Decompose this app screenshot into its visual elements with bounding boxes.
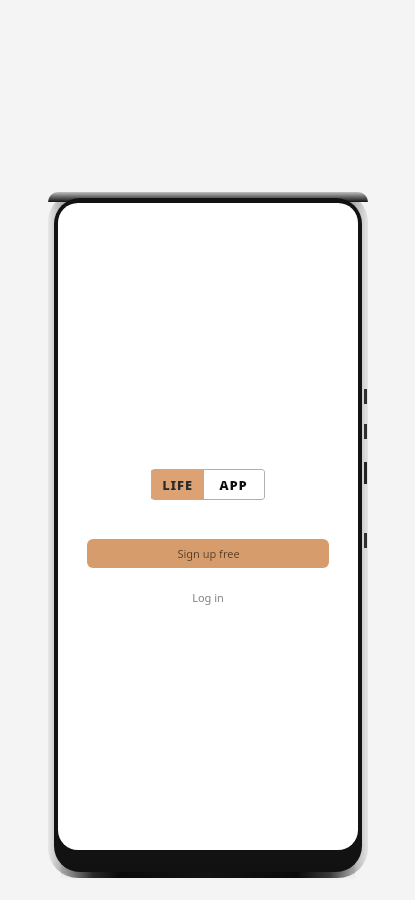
button[interactable]: Log in (163, 585, 253, 609)
staticText: LIFE (162, 476, 193, 494)
button[interactable]: Sign up free (87, 539, 329, 568)
staticText: Sign up free (177, 546, 240, 561)
staticText: APP (219, 476, 248, 494)
staticText: Log in (192, 590, 224, 605)
button[interactable]: LIFE (151, 469, 265, 500)
